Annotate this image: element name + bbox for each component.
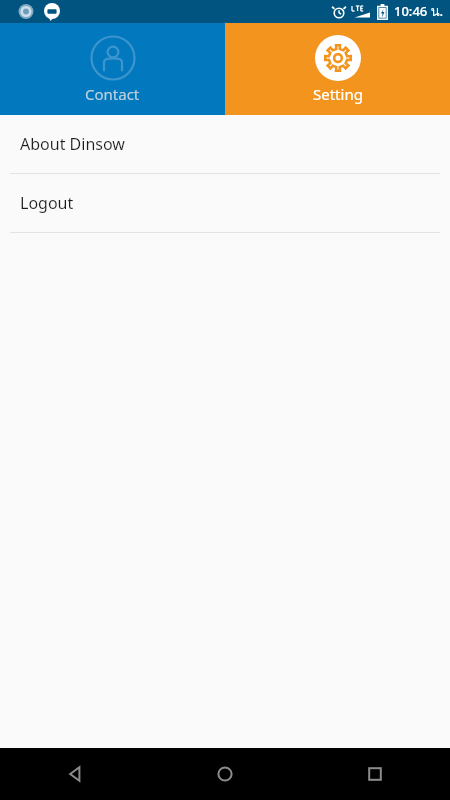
staticText: Contact	[85, 84, 140, 104]
button[interactable]: Logout	[0, 174, 450, 232]
staticText: 10:46 น.	[394, 1, 444, 22]
button[interactable]: Setting	[225, 23, 450, 115]
button[interactable]: Home	[150, 748, 300, 800]
staticText: About Dinsow	[20, 133, 125, 155]
staticText: Logout	[20, 192, 74, 214]
staticText: Setting	[313, 84, 363, 104]
button[interactable]: Contact	[0, 23, 225, 115]
button[interactable]: Recent apps	[300, 748, 450, 800]
button[interactable]: About Dinsow	[0, 115, 450, 173]
button[interactable]: Back	[0, 748, 150, 800]
